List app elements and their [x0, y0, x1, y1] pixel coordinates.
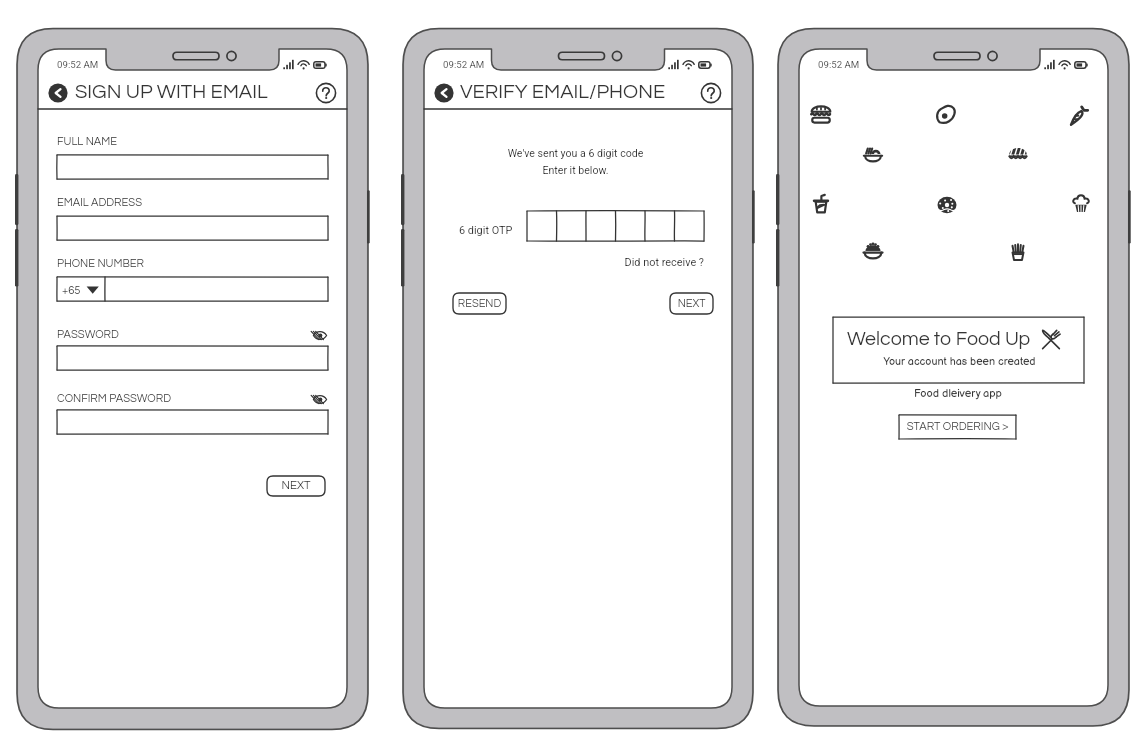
staticText: NEXT	[670, 298, 713, 309]
button[interactable]: Donut	[933, 191, 961, 219]
staticText: SIGN UP WITH EMAIL	[75, 82, 475, 103]
button[interactable]: NEXT	[267, 476, 325, 496]
button[interactable]: Six digit OTP field	[527, 211, 704, 241]
staticText: FULL NAME	[57, 136, 457, 147]
button[interactable]: Avocado	[932, 101, 960, 129]
staticText: Your account has been created	[849, 355, 1070, 368]
staticText: RESEND	[453, 298, 506, 309]
staticText: 09:52 AM	[818, 59, 1148, 70]
staticText: START ORDERING >	[899, 421, 1016, 433]
staticText: PHONE NUMBER	[57, 258, 457, 269]
button[interactable]: Full name field	[57, 155, 328, 179]
button[interactable]: Sushi	[1004, 139, 1032, 167]
staticText: Enter it below.	[455, 164, 696, 176]
button[interactable]: Password field	[57, 346, 328, 370]
button[interactable]: Help	[316, 83, 338, 105]
button[interactable]: Phone number field	[105, 277, 328, 301]
button[interactable]: Burger	[807, 100, 835, 128]
button[interactable]: Help	[701, 83, 723, 105]
staticText: 6 digit OTP	[459, 224, 859, 237]
button[interactable]: Fries	[1004, 238, 1032, 266]
staticText: PASSWORD	[57, 329, 457, 340]
button[interactable]: Show confirm password	[311, 391, 333, 409]
button[interactable]: Back	[38, 82, 78, 106]
staticText: Welcome to Food Up	[847, 329, 1148, 349]
button[interactable]: Drink	[807, 190, 835, 218]
staticText: VERIFY EMAIL/PHONE	[460, 82, 860, 103]
button[interactable]: Rice bowl	[859, 238, 887, 266]
staticText: Food dleivery app	[903, 387, 1013, 400]
staticText: NEXT	[267, 480, 325, 492]
button[interactable]: Back	[424, 82, 464, 106]
button[interactable]: RESEND	[453, 293, 506, 314]
staticText: 09:52 AM	[443, 59, 843, 70]
staticText: We've sent you a 6 digit code	[455, 147, 696, 159]
button[interactable]: NEXT	[670, 293, 713, 314]
staticText: +65	[62, 285, 462, 297]
staticText: CONFIRM PASSWORD	[57, 393, 457, 404]
button[interactable]: Did not receive ?	[604, 252, 704, 268]
button[interactable]: Noodles	[859, 141, 887, 169]
staticText: EMAIL ADDRESS	[57, 197, 457, 208]
button[interactable]: Email address field	[57, 216, 328, 240]
button[interactable]: Carrot	[1065, 102, 1093, 130]
button[interactable]: Show password	[311, 327, 333, 345]
button[interactable]: Confirm password field	[57, 410, 328, 434]
button[interactable]: START ORDERING >	[899, 415, 1016, 439]
staticText: 09:52 AM	[57, 59, 457, 70]
button[interactable]: Cupcake	[1067, 190, 1095, 218]
button[interactable]: Country code +65	[57, 277, 105, 301]
staticText: Did not receive ?	[604, 256, 704, 269]
